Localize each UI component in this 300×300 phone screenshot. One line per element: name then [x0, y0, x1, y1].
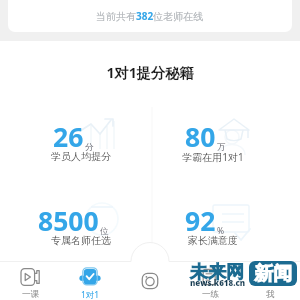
- staticText: 8500: [38, 203, 99, 239]
- staticText: 学员人均提分: [6, 150, 156, 163]
- staticText: 家长满意度: [138, 234, 288, 247]
- button[interactable]: Practice: [180, 261, 240, 300]
- staticText: 学霸在用1对1: [138, 150, 288, 164]
- staticText: 1对1提分秘籍: [0, 63, 300, 82]
- button[interactable]: Lessons: [0, 261, 60, 300]
- staticText: 未来网: [190, 261, 244, 284]
- staticText: news.k618.cn: [190, 277, 246, 288]
- staticText: 一练: [202, 289, 219, 300]
- staticText: 我: [266, 289, 275, 300]
- staticText: 分: [85, 142, 94, 153]
- staticText: 位: [100, 226, 109, 237]
- staticText: 26: [53, 119, 84, 155]
- staticText: 80: [185, 119, 216, 155]
- button[interactable]: One to one: [60, 261, 120, 300]
- staticText: 92: [185, 203, 216, 239]
- button[interactable]: Camera: [120, 261, 180, 300]
- staticText: %: [217, 225, 225, 237]
- staticText: 万: [217, 142, 226, 153]
- button[interactable]: Me: [240, 261, 300, 300]
- staticText: 专属名师任选: [6, 234, 156, 247]
- staticText: 一课: [22, 289, 39, 300]
- staticText: 1对1: [81, 289, 100, 300]
- staticText: 当前共有382位老师在线: [96, 9, 204, 23]
- staticText: 新闻: [254, 262, 292, 286]
